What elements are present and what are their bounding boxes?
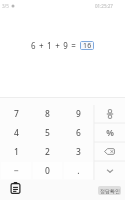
button[interactable]: 7: [0, 105, 32, 123]
staticText: 8: [45, 108, 50, 120]
staticText: 9: [76, 108, 81, 120]
button[interactable]: 9: [63, 105, 94, 123]
button[interactable]: 3: [63, 142, 94, 161]
button[interactable]: 6: [63, 123, 94, 142]
staticText: 2: [45, 146, 50, 158]
button[interactable]: 5: [32, 123, 63, 142]
button[interactable]: 8: [32, 105, 63, 123]
staticText: 5: [45, 127, 50, 139]
staticText: 3: [76, 146, 81, 158]
staticText: 7: [14, 108, 19, 120]
button[interactable]: Backspace: [94, 142, 125, 161]
staticText: .: [77, 165, 80, 177]
button[interactable]: 4: [0, 123, 32, 142]
button[interactable]: −: [1, 162, 31, 179]
button[interactable]: %: [94, 123, 125, 142]
other: Fraction: [105, 109, 115, 119]
button[interactable]: Hide keyboard: [94, 161, 125, 180]
staticText: 4: [14, 127, 19, 139]
staticText: 3/5: [2, 3, 9, 9]
staticText: 1: [14, 146, 19, 158]
button[interactable]: .: [64, 162, 93, 179]
staticText: 정답확인: [100, 188, 120, 194]
button[interactable]: Fraction: [94, 105, 125, 123]
staticText: 16: [83, 41, 92, 50]
staticText: 6 + 1 + 9 =: [31, 40, 80, 51]
button[interactable]: Clipboard: [0, 180, 30, 200]
staticText: %: [106, 127, 114, 139]
button[interactable]: 1: [0, 142, 32, 161]
other: Hide keyboard: [104, 165, 116, 177]
staticText: −: [14, 165, 19, 177]
button[interactable]: 정답확인: [98, 186, 121, 195]
button[interactable]: 0: [33, 162, 62, 179]
button[interactable]: 2: [32, 142, 63, 161]
staticText: 01:25:27: [95, 3, 113, 9]
staticText: 0: [45, 165, 50, 177]
other: Backspace: [104, 147, 115, 156]
other: Clipboard: [10, 182, 21, 194]
staticText: 6: [76, 127, 81, 139]
